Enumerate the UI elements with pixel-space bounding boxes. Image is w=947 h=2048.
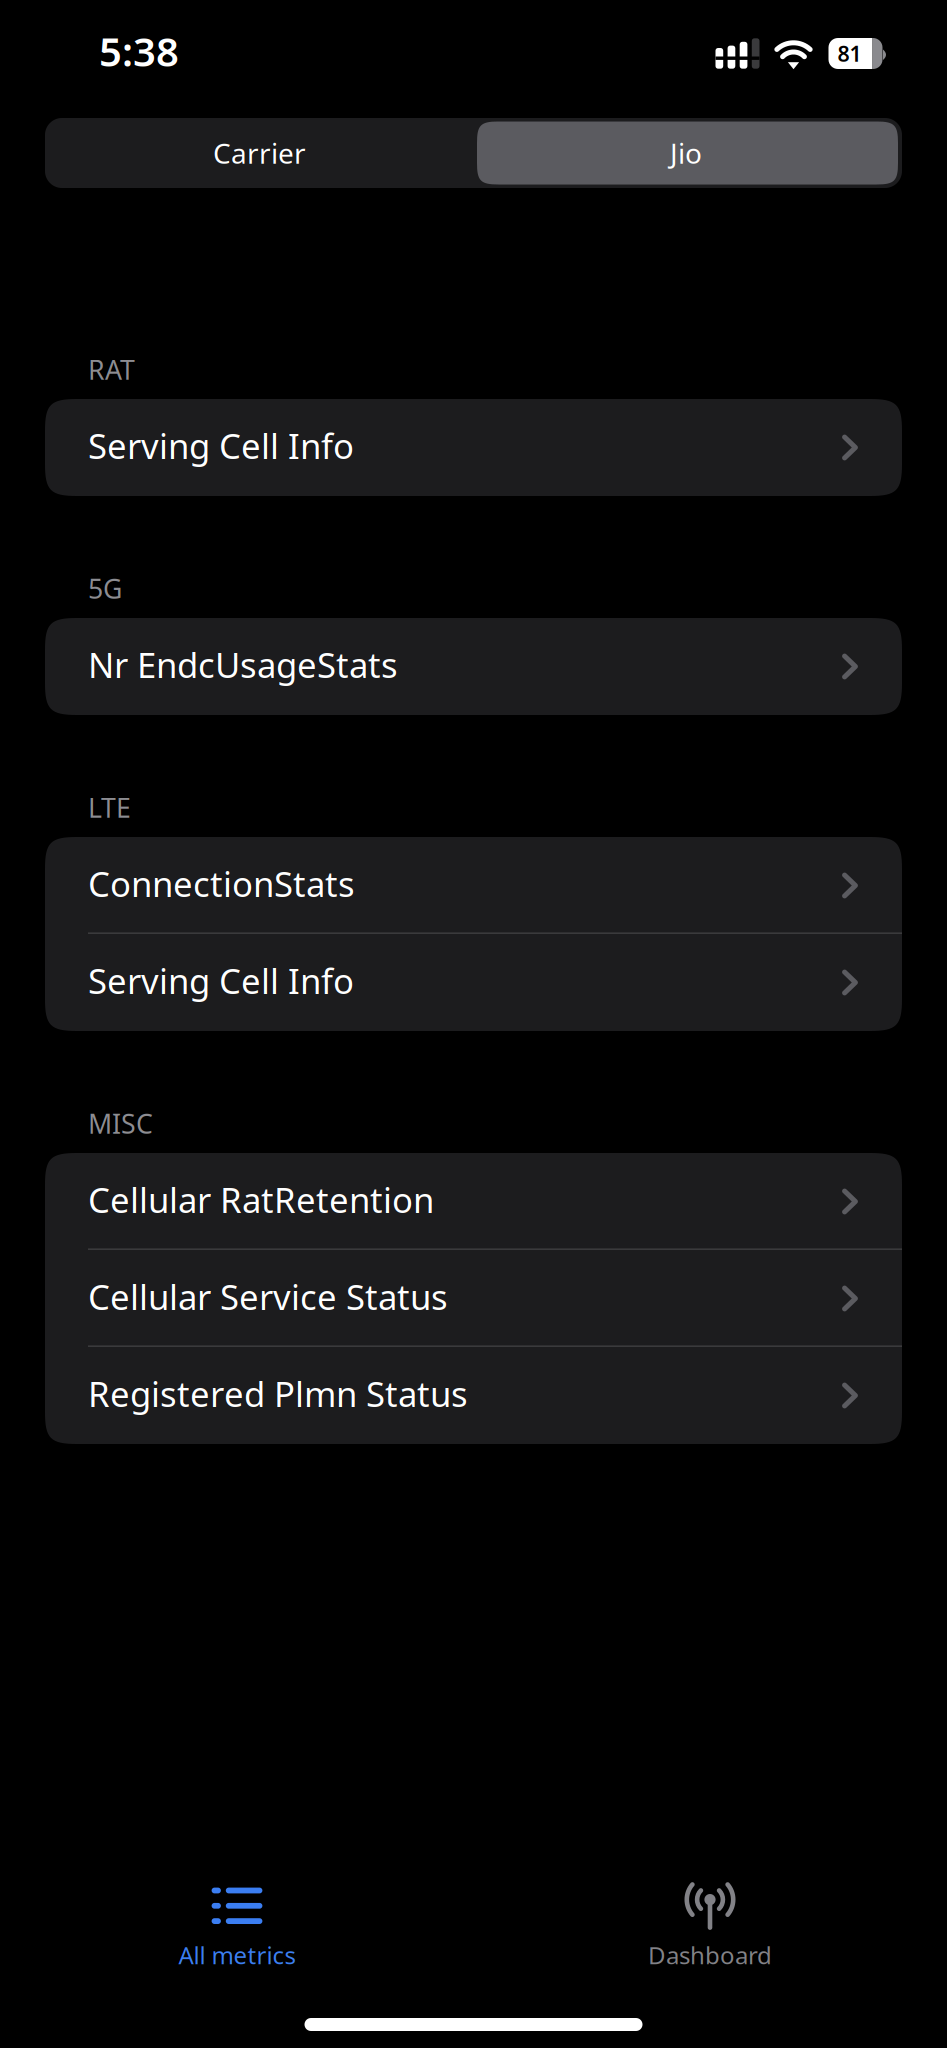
staticText: RAT <box>88 352 135 387</box>
staticText: ConnectionStats <box>88 860 355 906</box>
staticText: All metrics <box>178 1939 295 1971</box>
button[interactable]: Serving Cell Info <box>45 399 902 496</box>
staticText: Serving Cell Info <box>88 957 354 1003</box>
staticText: LTE <box>88 790 131 825</box>
button[interactable]: Cellular RatRetention <box>45 1153 902 1250</box>
staticText: Nr EndcUsageStats <box>88 641 398 687</box>
staticText: Serving Cell Info <box>88 422 354 468</box>
button[interactable]: Carrier <box>49 118 477 188</box>
staticText: 5:38 <box>99 24 179 77</box>
button[interactable]: Dashboard <box>473 1882 946 1986</box>
button[interactable]: ConnectionStats <box>45 837 902 934</box>
button[interactable]: Nr EndcUsageStats <box>45 618 902 715</box>
staticText: Jio <box>670 134 702 172</box>
staticText: Dashboard <box>648 1939 772 1971</box>
staticText: Cellular RatRetention <box>88 1176 434 1222</box>
button[interactable]: Jio <box>477 121 898 184</box>
button[interactable]: Cellular Service Status <box>45 1250 902 1347</box>
staticText: MISC <box>88 1106 153 1141</box>
staticText: 81 <box>837 39 861 68</box>
button[interactable]: Serving Cell Info <box>45 934 902 1031</box>
staticText: Registered Plmn Status <box>88 1370 468 1416</box>
staticText: Carrier <box>213 134 306 172</box>
staticText: 5G <box>88 571 122 606</box>
staticText: Cellular Service Status <box>88 1273 448 1319</box>
button[interactable]: All metrics <box>0 1882 473 1986</box>
button[interactable]: Registered Plmn Status <box>45 1347 902 1444</box>
